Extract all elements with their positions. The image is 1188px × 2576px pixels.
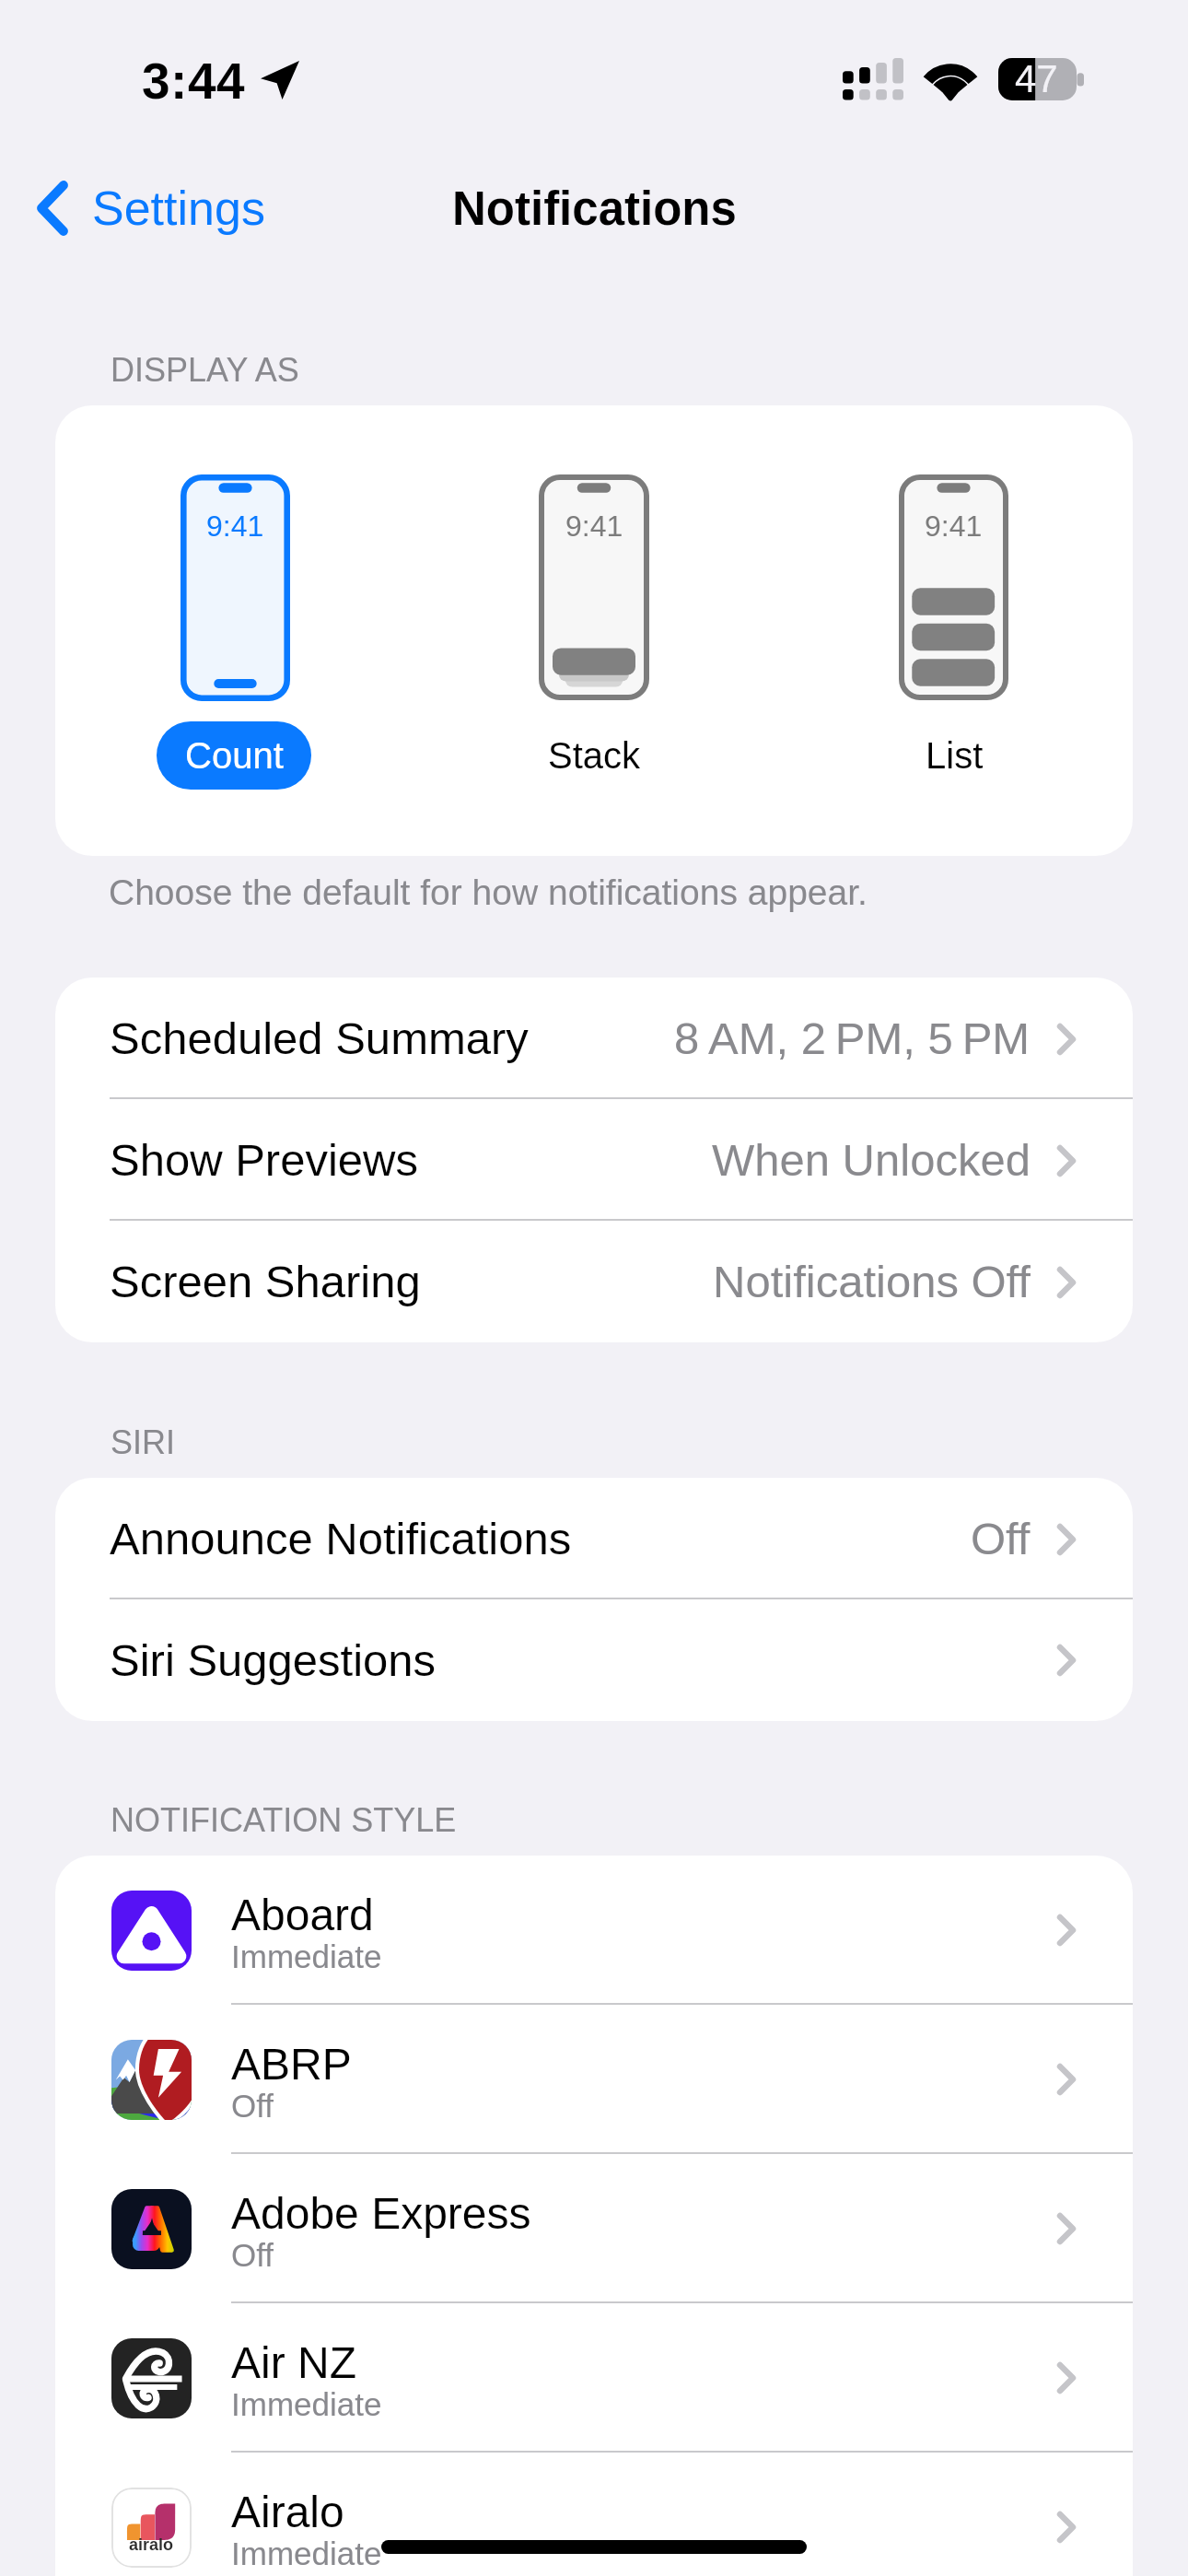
- staticText: Off: [231, 2237, 274, 2273]
- staticText: 9:41: [565, 509, 623, 543]
- staticText: Off: [231, 2088, 274, 2124]
- button[interactable]: Stack: [517, 721, 671, 790]
- button[interactable]: Screen Sharing: [55, 1221, 1133, 1342]
- button[interactable]: Count: [157, 721, 311, 790]
- staticText: DISPLAY AS: [111, 351, 299, 388]
- staticText: Notifications Off: [713, 1257, 1031, 1307]
- staticText: Announce Notifications: [110, 1514, 572, 1564]
- staticText: Immediate: [231, 2535, 382, 2571]
- staticText: Off: [971, 1514, 1031, 1564]
- staticText: 9:41: [206, 509, 264, 543]
- staticText: NOTIFICATION STYLE: [111, 1801, 457, 1838]
- staticText: Show Previews: [110, 1135, 418, 1186]
- staticText: Siri Suggestions: [110, 1635, 437, 1686]
- staticText: Airalo: [231, 2488, 344, 2537]
- staticText: Choose the default for how notifications…: [109, 872, 868, 913]
- staticText: 3:44: [142, 53, 246, 109]
- button[interactable]: Aboard: [55, 1856, 1133, 2005]
- button[interactable]: airalo: [55, 2453, 1133, 2576]
- staticText: Adobe Express: [231, 2189, 531, 2239]
- button[interactable]: ABRP: [55, 2005, 1133, 2154]
- staticText: When Unlocked: [712, 1135, 1031, 1186]
- staticText: airalo: [129, 2535, 174, 2554]
- staticText: Count: [185, 735, 284, 777]
- staticText: Screen Sharing: [110, 1257, 421, 1307]
- button[interactable]: Scheduled Summary: [55, 978, 1133, 1099]
- staticText: Notifications: [452, 182, 737, 235]
- staticText: Immediate: [231, 2386, 382, 2422]
- staticText: SIRI: [111, 1423, 176, 1460]
- staticText: List: [926, 735, 984, 777]
- staticText: 8 AM, 2 PM, 5 PM: [674, 1013, 1031, 1064]
- staticText: Immediate: [231, 1938, 382, 1974]
- staticText: 47: [1015, 57, 1058, 100]
- button[interactable]: List: [877, 721, 1031, 790]
- staticText: ABRP: [231, 2040, 352, 2090]
- button[interactable]: Settings: [37, 167, 265, 250]
- button[interactable]: Air NZ: [55, 2303, 1133, 2453]
- staticText: Scheduled Summary: [110, 1013, 529, 1064]
- button[interactable]: Announce Notifications: [55, 1478, 1133, 1599]
- button[interactable]: Siri Suggestions: [55, 1599, 1133, 1721]
- staticText: Aboard: [231, 1891, 374, 1940]
- staticText: 9:41: [925, 509, 983, 543]
- button[interactable]: Adobe Express: [55, 2154, 1133, 2303]
- staticText: Settings: [92, 181, 265, 235]
- staticText: Air NZ: [231, 2338, 356, 2388]
- button[interactable]: Show Previews: [55, 1099, 1133, 1221]
- staticText: Stack: [548, 735, 641, 777]
